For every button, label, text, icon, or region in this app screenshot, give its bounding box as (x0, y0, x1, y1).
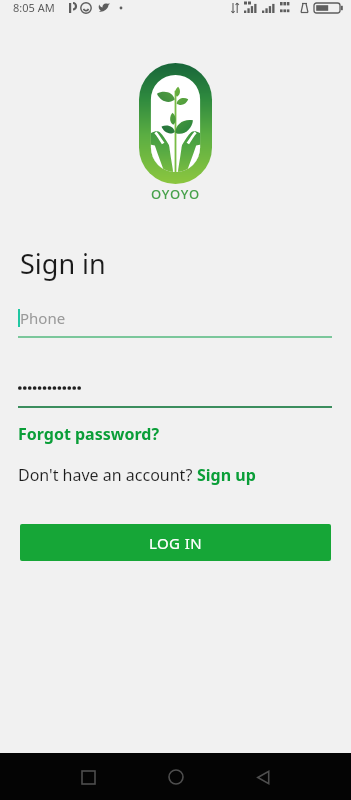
staticText: Phone (20, 308, 66, 328)
staticText: Sign up (197, 464, 256, 486)
button[interactable]: Sign up (197, 464, 256, 486)
staticText: Forgot password? (18, 423, 160, 445)
button[interactable]: LOG IN (20, 524, 331, 561)
button[interactable]: Back (245, 759, 281, 795)
staticText: Sign in (20, 245, 106, 282)
button[interactable]: Recents (70, 759, 106, 795)
button[interactable]: Home (158, 759, 194, 795)
staticText: Don't have an account? (18, 464, 197, 486)
button[interactable]: Forgot password? (18, 423, 160, 445)
staticText: LOG IN (149, 533, 202, 553)
staticText: OYOYO (151, 185, 200, 203)
staticText: 8:05 AM (13, 0, 55, 15)
